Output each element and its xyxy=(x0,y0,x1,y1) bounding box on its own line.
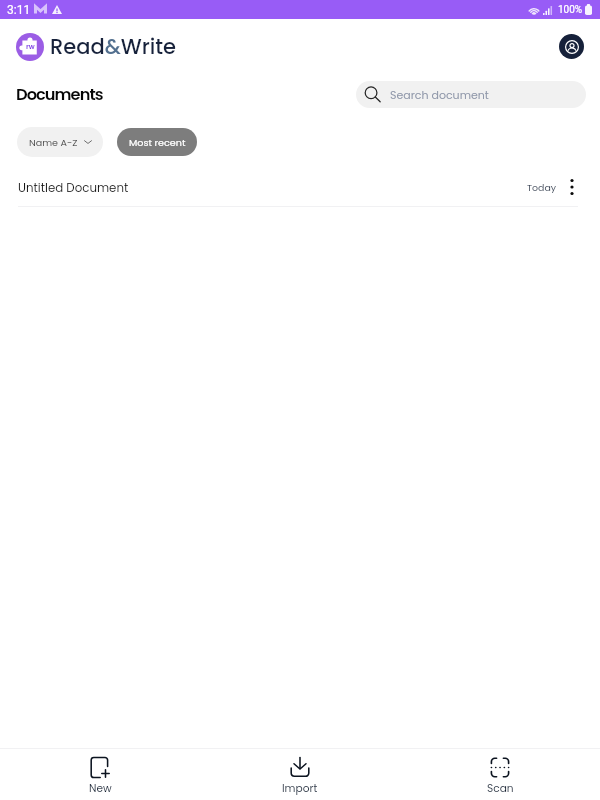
staticText: Scan xyxy=(487,781,514,796)
staticText: New xyxy=(89,781,112,796)
button[interactable]: Name A-Z xyxy=(17,127,103,157)
button[interactable]: Untitled Document xyxy=(0,168,600,206)
button[interactable]: More options xyxy=(562,177,582,197)
button[interactable]: Scan xyxy=(400,749,600,800)
staticText: Read&Write xyxy=(50,32,177,61)
button[interactable]: Search document xyxy=(356,81,586,108)
staticText: Documents xyxy=(16,83,103,106)
staticText: 100% xyxy=(558,4,583,16)
staticText: Most recent xyxy=(129,136,186,149)
button[interactable]: Import xyxy=(200,749,400,800)
button[interactable]: Account xyxy=(559,34,584,59)
button[interactable]: New xyxy=(0,749,200,800)
staticText: Untitled Document xyxy=(18,180,129,197)
staticText: Today xyxy=(527,181,557,194)
staticText: Search document xyxy=(390,87,489,102)
staticText: Import xyxy=(282,781,318,796)
button[interactable]: Most recent xyxy=(117,128,197,156)
staticText: 3:11 xyxy=(7,3,31,17)
staticText: rw xyxy=(26,42,35,52)
staticText: Name A-Z xyxy=(29,136,78,149)
